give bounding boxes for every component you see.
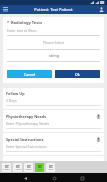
- staticText: Please Select: [43, 40, 65, 45]
- button[interactable]: Orders: [24, 163, 33, 172]
- button[interactable]: Cancel: [7, 70, 52, 78]
- staticText: Enter Special Instructions: [6, 144, 47, 149]
- button[interactable]: More: [46, 163, 55, 172]
- button[interactable]: Notes: [13, 163, 22, 172]
- staticText: Special Instructions: [6, 137, 95, 142]
- button[interactable]: Recent apps: [78, 174, 86, 182]
- staticText: Enter Physiotherapy Needs: [6, 121, 50, 126]
- staticText: Physiotherapy Needs: [6, 114, 95, 119]
- button[interactable]: Home: [50, 174, 58, 182]
- button[interactable]: Plan: [35, 163, 44, 172]
- staticText: Follow Up: [6, 91, 101, 96]
- button[interactable]: Patient profile: [98, 6, 105, 13]
- staticText: Enter text to filter...: [7, 28, 39, 33]
- button[interactable]: Dictate Physiotherapy Needs: [95, 113, 101, 119]
- button[interactable]: Dictate Special Instructions: [95, 136, 101, 142]
- staticText: Cancel: [24, 72, 36, 77]
- staticText: 3 Days: [6, 98, 17, 103]
- staticText: *: [7, 20, 10, 25]
- staticText: Ok: [75, 72, 80, 77]
- staticText: Notes: [15, 168, 21, 171]
- button[interactable]: Physiotherapy Needs: [3, 110, 104, 132]
- button[interactable]: Special Instructions: [3, 133, 104, 155]
- button[interactable]: Menu: [2, 6, 9, 13]
- staticText: string: [49, 53, 59, 58]
- staticText: Patient: [3, 168, 10, 171]
- button[interactable]: Follow Up: [3, 88, 104, 109]
- staticText: Patient: Test Patient: [34, 7, 73, 12]
- staticText: Orders: [25, 168, 32, 171]
- staticText: Radiology Tests: [11, 20, 42, 25]
- button[interactable]: Back: [21, 174, 29, 182]
- button[interactable]: Patient: [2, 163, 11, 172]
- staticText: More: [48, 168, 53, 171]
- staticText: Plan: [38, 168, 42, 171]
- button[interactable]: Ok: [55, 70, 100, 78]
